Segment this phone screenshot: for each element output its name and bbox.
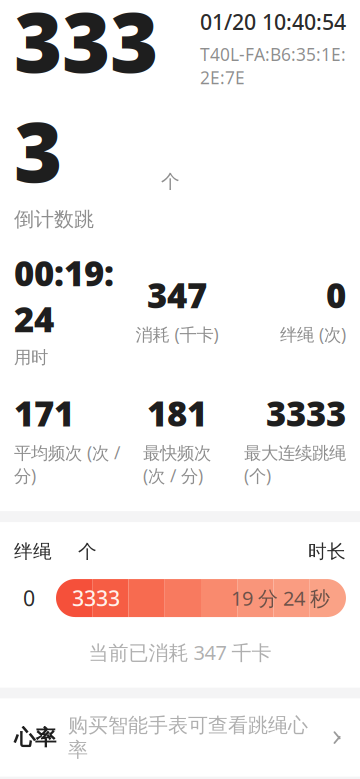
staticText: 01/20 10:40:54 [200, 8, 346, 36]
staticText: 绊绳 (次) [280, 323, 346, 346]
staticText: 19 分 24 秒 [231, 585, 330, 611]
staticText: 最大连续跳绳 (个) [244, 441, 346, 487]
staticText: 181 [147, 390, 207, 436]
staticText: 消耗 (千卡) [135, 323, 218, 346]
staticText: 当前已消耗 347 千卡 [88, 639, 271, 666]
staticText: 最快频次 (次 / 分) [143, 441, 211, 487]
staticText: T40L-FA:B6:35:1E:2E:7E [200, 43, 346, 89]
staticText: 倒计数跳 [14, 207, 94, 232]
staticText: 0 [326, 272, 346, 318]
staticText: 00:19:24 [14, 250, 114, 342]
staticText: 3333 [72, 584, 120, 612]
staticText: 3333 [14, 0, 158, 205]
staticText: 平均频次 (次 / 分) [14, 441, 120, 487]
staticText: 心率 [14, 724, 56, 751]
staticText: 个 [78, 540, 97, 563]
staticText: 购买智能手表可查看跳绳心率 [68, 713, 308, 762]
staticText: 时长 [308, 540, 346, 563]
staticText: 347 [147, 272, 207, 318]
staticText: 个 [161, 170, 180, 193]
staticText: 绊绳 [14, 540, 52, 563]
staticText: 用时 [14, 347, 48, 368]
staticText: 171 [14, 390, 74, 436]
staticText: 0 [23, 584, 35, 612]
staticText: 3333 [266, 390, 346, 436]
button[interactable]: 心率 [0, 699, 360, 777]
